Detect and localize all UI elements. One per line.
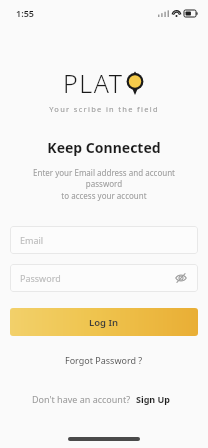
staticText: Log In [89,316,119,329]
staticText: Keep Connected [0,138,208,157]
button[interactable]: Show password [174,271,188,285]
staticText: Password [20,272,61,284]
button[interactable]: Log In [10,308,198,336]
staticText: Enter your Email address and account pas… [14,167,194,202]
staticText: Your scribe in the field [0,104,208,114]
button[interactable]: Forgot Password ? [57,350,151,370]
button[interactable]: Sign Up [131,390,176,408]
staticText: Forgot Password ? [65,354,143,366]
staticText: Don't have an account? [32,393,131,405]
staticText: 1:55 [16,7,34,19]
staticText: PLAT [63,66,124,100]
button[interactable]: Email [10,226,198,254]
button[interactable]: Password [10,264,198,292]
staticText: Email [20,234,44,246]
staticText: Sign Up [136,393,171,405]
